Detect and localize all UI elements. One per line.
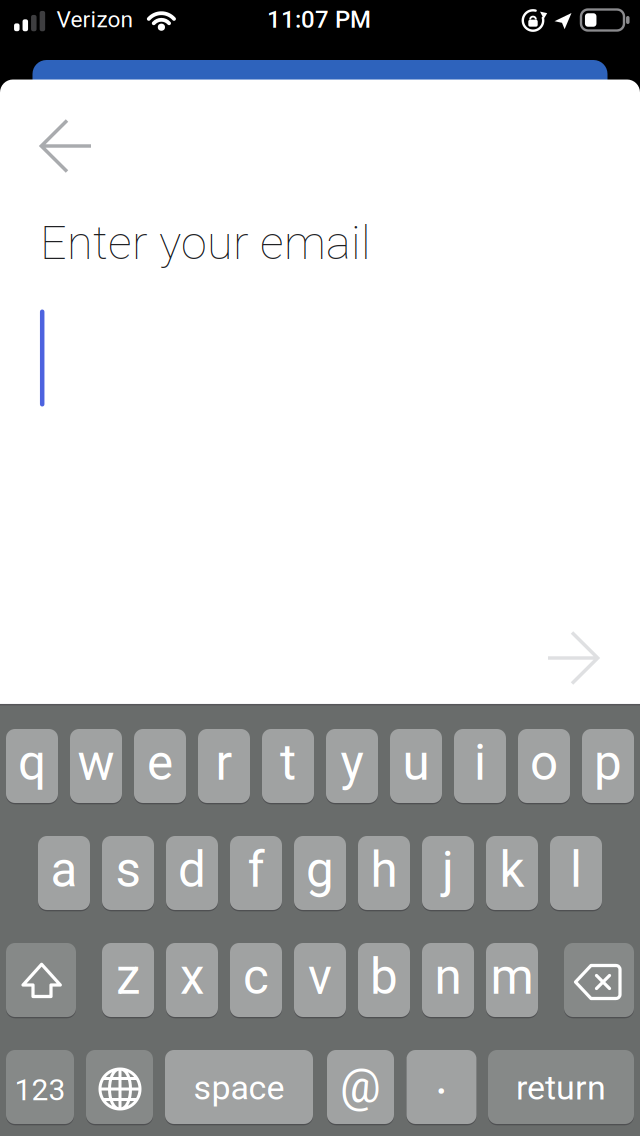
staticText: w — [77, 734, 114, 792]
staticText: Enter your email — [40, 216, 371, 270]
staticText: d — [178, 841, 206, 899]
button[interactable]: r — [198, 729, 250, 803]
button[interactable]: s — [102, 836, 154, 910]
staticText: j — [442, 841, 454, 899]
staticText: a — [50, 841, 77, 899]
button[interactable]: b — [358, 943, 410, 1017]
button[interactable]: . — [406, 1050, 476, 1124]
staticText: t — [280, 734, 296, 792]
button[interactable]: t — [262, 729, 314, 803]
staticText: m — [490, 948, 533, 1006]
button[interactable]: g — [294, 836, 346, 910]
staticText: 11:07 PM — [267, 5, 371, 33]
button[interactable]: z — [102, 943, 154, 1017]
button[interactable]: p — [582, 729, 634, 803]
staticText: z — [116, 948, 140, 1006]
button[interactable]: c — [230, 943, 282, 1017]
staticText: . — [435, 1048, 448, 1106]
staticText: o — [530, 734, 558, 792]
button[interactable]: v — [294, 943, 346, 1017]
staticText: c — [243, 948, 269, 1006]
staticText: g — [306, 841, 334, 899]
staticText: n — [434, 948, 461, 1006]
staticText: space — [193, 1068, 284, 1108]
button[interactable]: m — [486, 943, 538, 1017]
staticText: x — [180, 948, 204, 1006]
staticText: u — [402, 734, 429, 792]
button[interactable]: k — [486, 836, 538, 910]
button[interactable]: y — [326, 729, 378, 803]
button[interactable]: Shift — [6, 943, 76, 1017]
staticText: q — [18, 734, 46, 792]
staticText: v — [308, 948, 332, 1006]
button[interactable]: x — [166, 943, 218, 1017]
button[interactable]: Next — [541, 626, 605, 690]
button[interactable]: d — [166, 836, 218, 910]
button[interactable]: e — [134, 729, 186, 803]
staticText: return — [516, 1068, 606, 1108]
staticText: Verizon — [56, 6, 133, 33]
button[interactable]: u — [390, 729, 442, 803]
button[interactable]: Next keyboard — [86, 1050, 153, 1124]
staticText: b — [370, 948, 398, 1006]
button[interactable]: space — [165, 1050, 313, 1124]
button[interactable]: i — [454, 729, 506, 803]
staticText: h — [370, 841, 397, 899]
staticText: 123 — [14, 1072, 65, 1108]
button[interactable]: a — [38, 836, 90, 910]
button[interactable]: h — [358, 836, 410, 910]
button[interactable]: j — [422, 836, 474, 910]
button[interactable]: n — [422, 943, 474, 1017]
button[interactable]: Back — [33, 114, 97, 178]
button[interactable]: q — [6, 729, 58, 803]
staticText: k — [499, 841, 524, 899]
staticText: @ — [340, 1060, 381, 1113]
staticText: y — [340, 734, 363, 792]
staticText: l — [570, 841, 582, 899]
button[interactable]: o — [518, 729, 570, 803]
button[interactable]: Delete — [564, 943, 634, 1017]
staticText: f — [247, 841, 264, 899]
staticText: e — [147, 734, 173, 792]
button[interactable]: @ — [327, 1050, 394, 1124]
staticText: s — [115, 841, 140, 899]
button[interactable]: 123 — [6, 1050, 74, 1124]
staticText: i — [474, 734, 486, 792]
button[interactable]: f — [230, 836, 282, 910]
button[interactable]: return — [488, 1050, 634, 1124]
button[interactable]: l — [550, 836, 602, 910]
staticText: r — [215, 734, 232, 792]
staticText: p — [594, 734, 622, 792]
button[interactable]: w — [70, 729, 122, 803]
